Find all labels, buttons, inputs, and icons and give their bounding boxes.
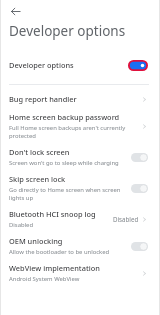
staticText: Disabled — [9, 221, 34, 229]
button[interactable]: OEM unlocking — [4, 236, 154, 256]
button[interactable]: Back — [7, 3, 23, 19]
staticText: Don't lock screen — [9, 147, 70, 157]
button[interactable]: Bug report handler — [4, 94, 154, 104]
button[interactable]: Bluetooth HCI snoop log — [4, 209, 154, 229]
staticText: OEM unlocking — [9, 236, 63, 246]
staticText: Developer options — [9, 60, 128, 70]
staticText: WebView implementation — [9, 263, 100, 273]
button[interactable]: WebView implementation — [4, 263, 154, 283]
staticText: Skip screen lock — [9, 174, 66, 184]
staticText: Go directly to Home screen when screen l… — [9, 186, 127, 202]
staticText: Disabled — [113, 215, 139, 223]
button[interactable]: Home screen backup password — [4, 112, 154, 140]
staticText: Allow the bootloader to be unlocked — [9, 248, 110, 256]
staticText: Android System WebView — [9, 275, 80, 283]
button[interactable]: Skip screen lock — [4, 174, 154, 202]
button[interactable]: Don't lock screen — [4, 147, 154, 167]
button[interactable]: Toggle, off — [131, 242, 148, 251]
staticText: Full Home screen backups aren't currentl… — [9, 124, 137, 140]
button[interactable]: Toggle, off — [131, 153, 148, 162]
staticText: Screen won't go to sleep while charging — [9, 159, 119, 167]
button[interactable]: Developer options — [4, 54, 154, 76]
button[interactable]: Toggle, off — [131, 184, 148, 193]
staticText: Developer options — [9, 22, 126, 40]
staticText: Bug report handler — [9, 94, 77, 104]
staticText: Home screen backup password — [9, 112, 120, 122]
staticText: Bluetooth HCI snoop log — [9, 209, 96, 219]
button[interactable]: Developer options toggle, on — [128, 60, 148, 71]
